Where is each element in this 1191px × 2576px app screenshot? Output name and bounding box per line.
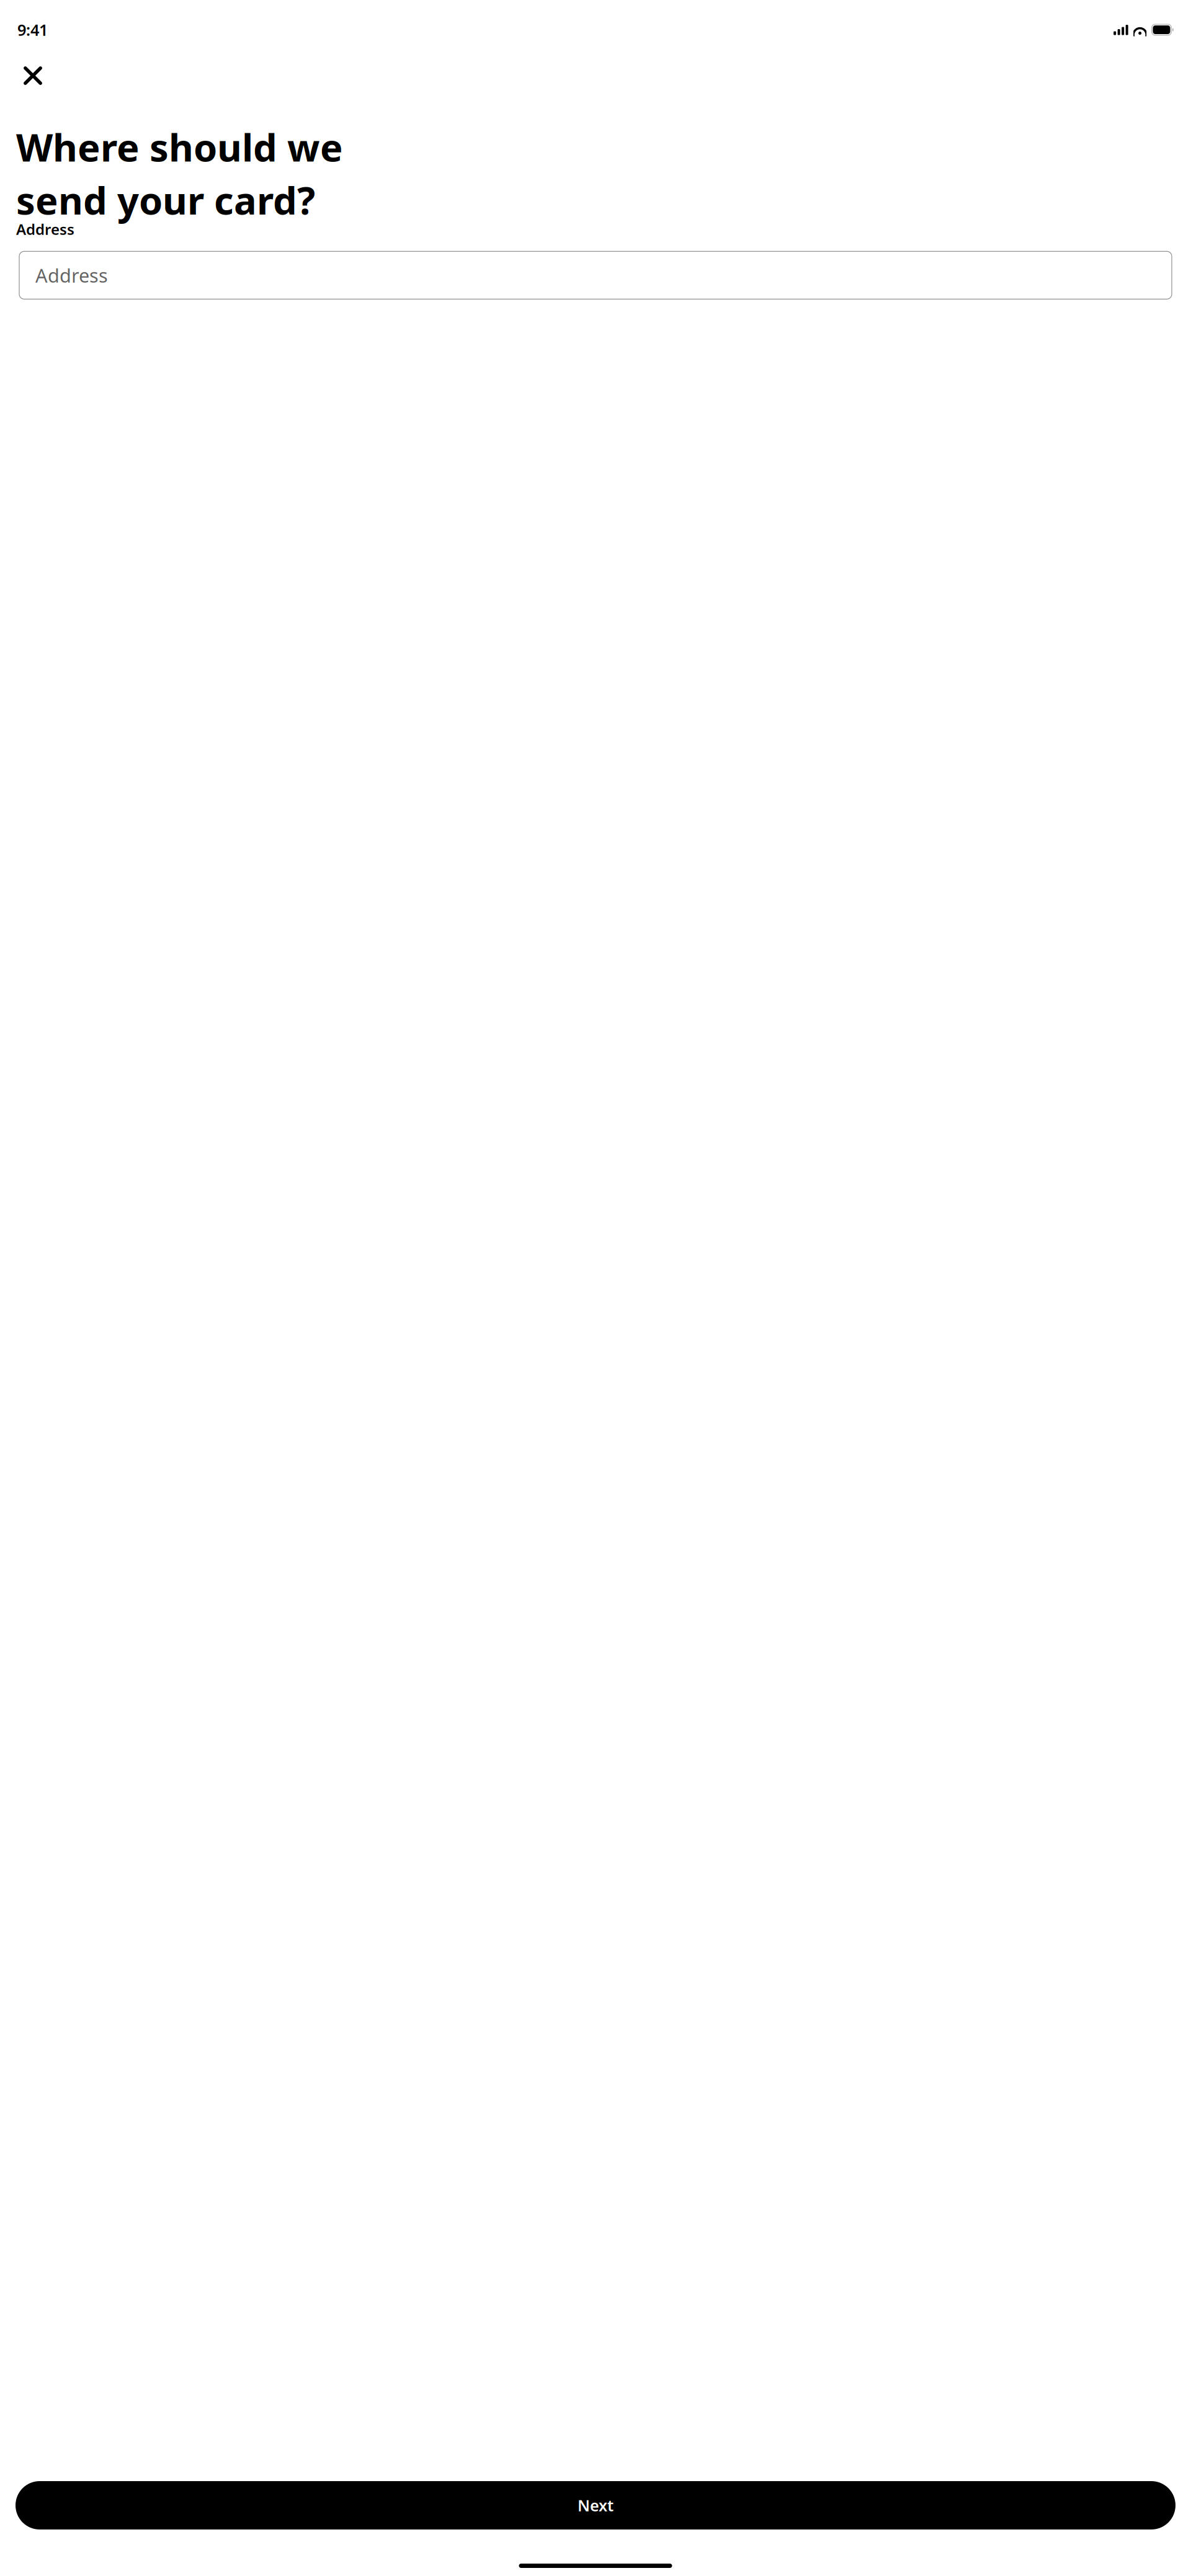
button[interactable]: Close: [13, 56, 53, 95]
button[interactable]: Next: [16, 2481, 1175, 2529]
staticText: Address: [35, 263, 108, 288]
staticText: Next: [578, 2495, 613, 2516]
staticText: 9:41: [17, 19, 48, 40]
staticText: Where should we send your card?: [16, 122, 343, 172]
staticText: Address: [16, 219, 74, 239]
button[interactable]: Address: [19, 251, 1172, 299]
